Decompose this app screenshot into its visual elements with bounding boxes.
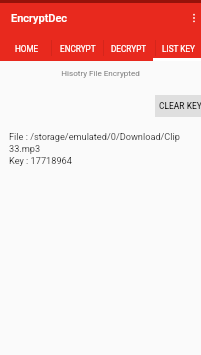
staticText: Key : 17718964 (9, 155, 72, 166)
staticText: HOME (15, 44, 39, 54)
staticText: DECRYPT (111, 44, 147, 54)
staticText: File : /storage/emulated/0/Download/Clip (9, 131, 180, 142)
button[interactable]: HOME (0, 35, 51, 61)
button[interactable]: CLEAR KEY (155, 95, 201, 117)
button[interactable]: More options (184, 8, 201, 28)
staticText: EncryptDec (11, 12, 68, 25)
staticText: Hisotry File Encrypted (0, 68, 201, 77)
staticText: CLEAR KEY (159, 101, 201, 111)
staticText: 33.mp3 (9, 143, 41, 154)
button[interactable]: LIST KEY (153, 35, 201, 61)
staticText: LIST KEY (162, 44, 195, 54)
button[interactable]: DECRYPT (102, 35, 153, 61)
staticText: ENCRYPT (60, 44, 96, 54)
button[interactable]: ENCRYPT (51, 35, 102, 61)
